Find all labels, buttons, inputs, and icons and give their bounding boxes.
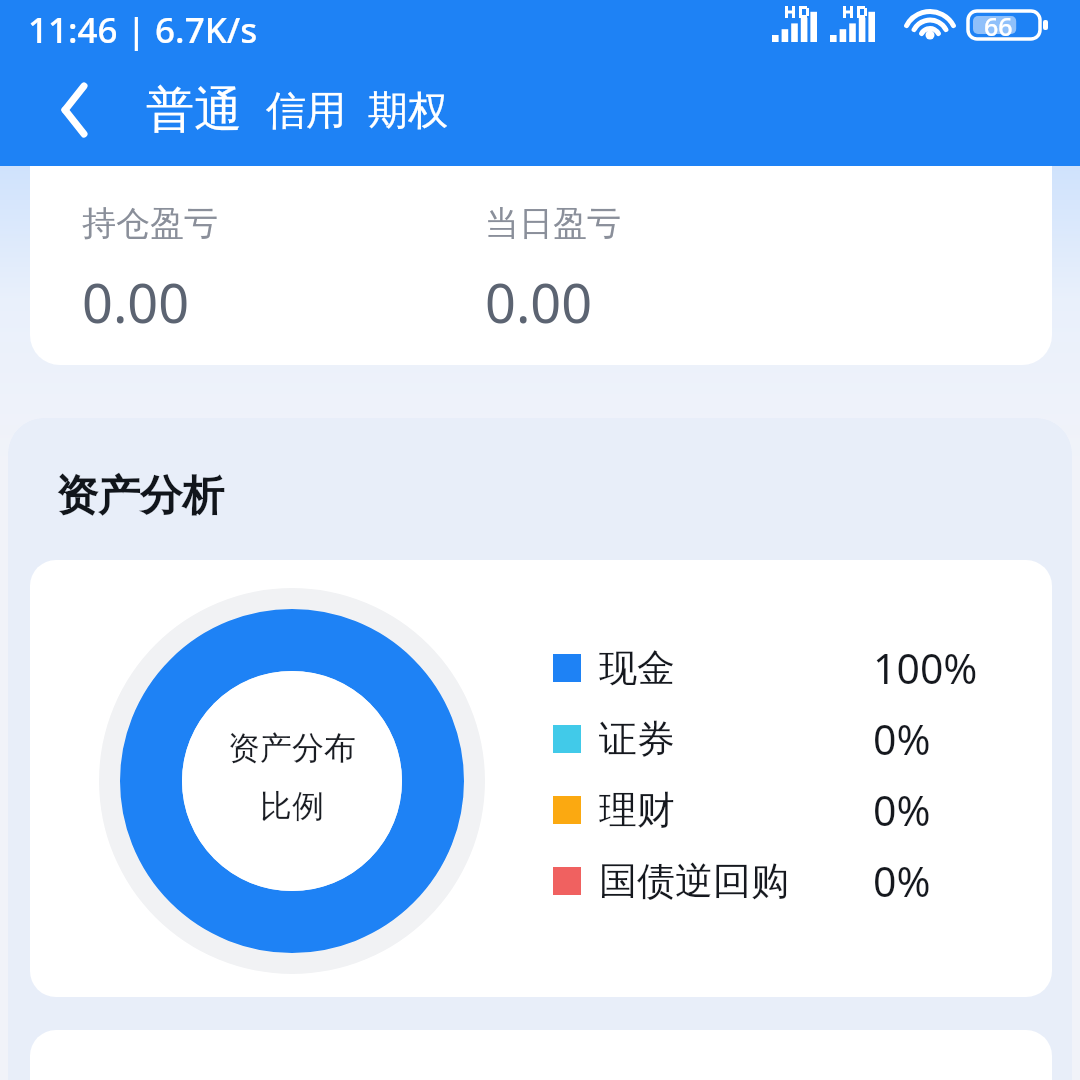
button[interactable]: 信用	[266, 85, 368, 140]
button[interactable]: 理财	[553, 774, 1033, 845]
button[interactable]: 现金	[553, 632, 1033, 703]
staticText: 理财	[599, 786, 675, 834]
button[interactable]: 证券	[553, 703, 1033, 774]
staticText: 比例	[260, 786, 324, 826]
button[interactable]: 国债逆回购	[553, 845, 1033, 916]
staticText: 持仓盈亏	[82, 202, 218, 245]
button[interactable]: Back	[48, 80, 108, 140]
staticText: 资产分析	[56, 470, 224, 523]
button[interactable]: 期权	[368, 85, 448, 140]
staticText: 信用	[266, 85, 346, 135]
staticText: 资产分布	[228, 728, 356, 768]
staticText: 当日盈亏	[485, 202, 621, 245]
button[interactable]: 普通	[146, 80, 266, 140]
staticText: 国债逆回购	[599, 857, 789, 905]
staticText: 普通	[146, 80, 242, 140]
staticText: 66	[984, 9, 1013, 43]
staticText: 0.00	[485, 265, 593, 339]
staticText: 现金	[599, 644, 675, 692]
staticText: 11:46 | 6.7K/s	[28, 6, 258, 54]
staticText: 期权	[368, 85, 448, 135]
staticText: 0%	[873, 782, 931, 838]
staticText: 100%	[873, 640, 978, 696]
staticText: 证券	[599, 715, 675, 763]
staticText: 0.00	[82, 265, 190, 339]
staticText: 0%	[873, 853, 931, 909]
staticText: 0%	[873, 711, 931, 767]
